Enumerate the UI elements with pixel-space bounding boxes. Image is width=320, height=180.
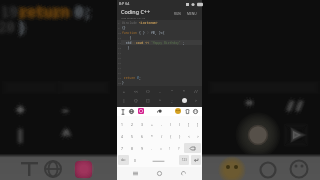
- staticText: 20: [2, 18, 19, 37]
- button[interactable]: |: [117, 96, 130, 105]
- button[interactable]: <: [184, 130, 193, 142]
- staticText: return: [122, 76, 137, 80]
- staticText: 12: [118, 41, 121, 44]
- staticText: }: [20, 17, 29, 36]
- staticText: return: [19, 2, 70, 21]
- button[interactable]: Backspace: [184, 143, 201, 153]
- button[interactable]: Stickers: [138, 108, 144, 114]
- button[interactable]: Home: [154, 168, 165, 179]
- button[interactable]: +: [147, 118, 157, 130]
- button[interactable]: >: [190, 96, 202, 105]
- button[interactable]: GIF: [157, 109, 162, 114]
- staticText: 20: [0, 17, 17, 36]
- button[interactable]: Clothes: [185, 109, 190, 114]
- button[interactable]: Recents: [130, 168, 141, 179]
- staticText: 8: [131, 146, 133, 151]
- staticText: |: [17, 125, 27, 145]
- button[interactable]: {: [166, 130, 175, 142]
- button[interactable]: =: [156, 142, 165, 154]
- staticText: return: [21, 5, 72, 24]
- staticText: 0;: [77, 5, 94, 24]
- staticText: }: [18, 19, 27, 38]
- button[interactable]: Run: [182, 98, 187, 103]
- button[interactable]: Emoji: [175, 108, 181, 114]
- staticText: return: [19, 4, 70, 23]
- staticText: 0;: [76, 3, 93, 22]
- staticText: 14: [118, 51, 121, 54]
- staticText: ::: [132, 41, 136, 45]
- staticText: <: [188, 134, 190, 139]
- button[interactable]: ?: [174, 142, 183, 154]
- staticText: -: [64, 100, 74, 120]
- button[interactable]: abc: [118, 155, 129, 165]
- staticText: 0;: [77, 2, 94, 21]
- button[interactable]: 6: [137, 130, 147, 142]
- button[interactable]: /: [157, 130, 166, 142]
- button[interactable]: ^: [154, 96, 166, 105]
- button[interactable]: 5: [127, 130, 137, 142]
- button[interactable]: Settings: [193, 109, 198, 114]
- staticText: +: [17, 100, 27, 120]
- button[interactable]: 2: [127, 118, 137, 130]
- button[interactable]: >: [193, 130, 202, 142]
- button[interactable]: RUN: [173, 9, 182, 19]
- button[interactable]: -: [157, 118, 166, 130]
- staticText: 20: [0, 19, 14, 38]
- staticText: <iostream>: [139, 21, 158, 25]
- button[interactable]: MENU: [186, 9, 198, 19]
- button[interactable]: Back: [178, 168, 189, 179]
- staticText: }: [22, 18, 31, 37]
- button[interactable]: 4: [117, 130, 127, 142]
- staticText: |: [12, 124, 22, 144]
- staticText: ": [243, 94, 253, 114]
- staticText: ^: [61, 128, 71, 148]
- staticText: return: [17, 3, 68, 22]
- staticText: 3: [141, 122, 143, 127]
- button[interactable]: Enter: [191, 155, 201, 165]
- staticText: 19: [5, 1, 22, 20]
- button[interactable]: ": [166, 88, 178, 96]
- button[interactable]: Text editing: [121, 109, 125, 115]
- button[interactable]: 123: [179, 155, 189, 165]
- staticText: Auto saved at 7:51:30: [121, 16, 146, 19]
- button[interactable]: {}: [130, 96, 142, 105]
- button[interactable]: 8: [127, 142, 137, 154]
- button[interactable]: 7: [117, 142, 127, 154]
- button[interactable]: 3: [137, 118, 147, 130]
- button[interactable]: 0: [130, 154, 139, 166]
- staticText: !: [169, 146, 170, 151]
- staticText: +: [16, 101, 26, 121]
- button[interactable]: <<: [130, 88, 142, 96]
- staticText: -: [61, 97, 71, 117]
- staticText: +: [19, 100, 29, 120]
- button[interactable]: *: [178, 88, 190, 96]
- staticText: }: [17, 19, 26, 38]
- button[interactable]: }: [175, 130, 184, 142]
- button[interactable]: +: [117, 88, 130, 96]
- button[interactable]: Run: [178, 96, 190, 105]
- button[interactable]: Change language: [129, 109, 134, 114]
- button[interactable]: 1: [117, 118, 127, 130]
- staticText: return: [19, 0, 70, 19]
- staticText: }: [18, 15, 27, 34]
- button[interactable]: Space: [140, 155, 177, 165]
- button[interactable]: ]: [193, 118, 202, 130]
- button[interactable]: *: [147, 130, 157, 142]
- button[interactable]: [: [184, 118, 193, 130]
- staticText: return: [23, 3, 74, 22]
- button[interactable]: !: [165, 142, 174, 154]
- staticText: 2: [131, 122, 133, 127]
- staticText: +: [18, 102, 28, 122]
- staticText: }: [143, 31, 147, 35]
- button[interactable]: ): [175, 118, 184, 130]
- staticText: -: [58, 101, 68, 121]
- button[interactable]: (): [142, 88, 154, 96]
- button[interactable]: (: [166, 118, 175, 130]
- button[interactable]: []: [142, 96, 154, 105]
- staticText: -: [61, 99, 71, 119]
- button[interactable]: //: [190, 88, 202, 96]
- button[interactable]: 9: [137, 142, 147, 154]
